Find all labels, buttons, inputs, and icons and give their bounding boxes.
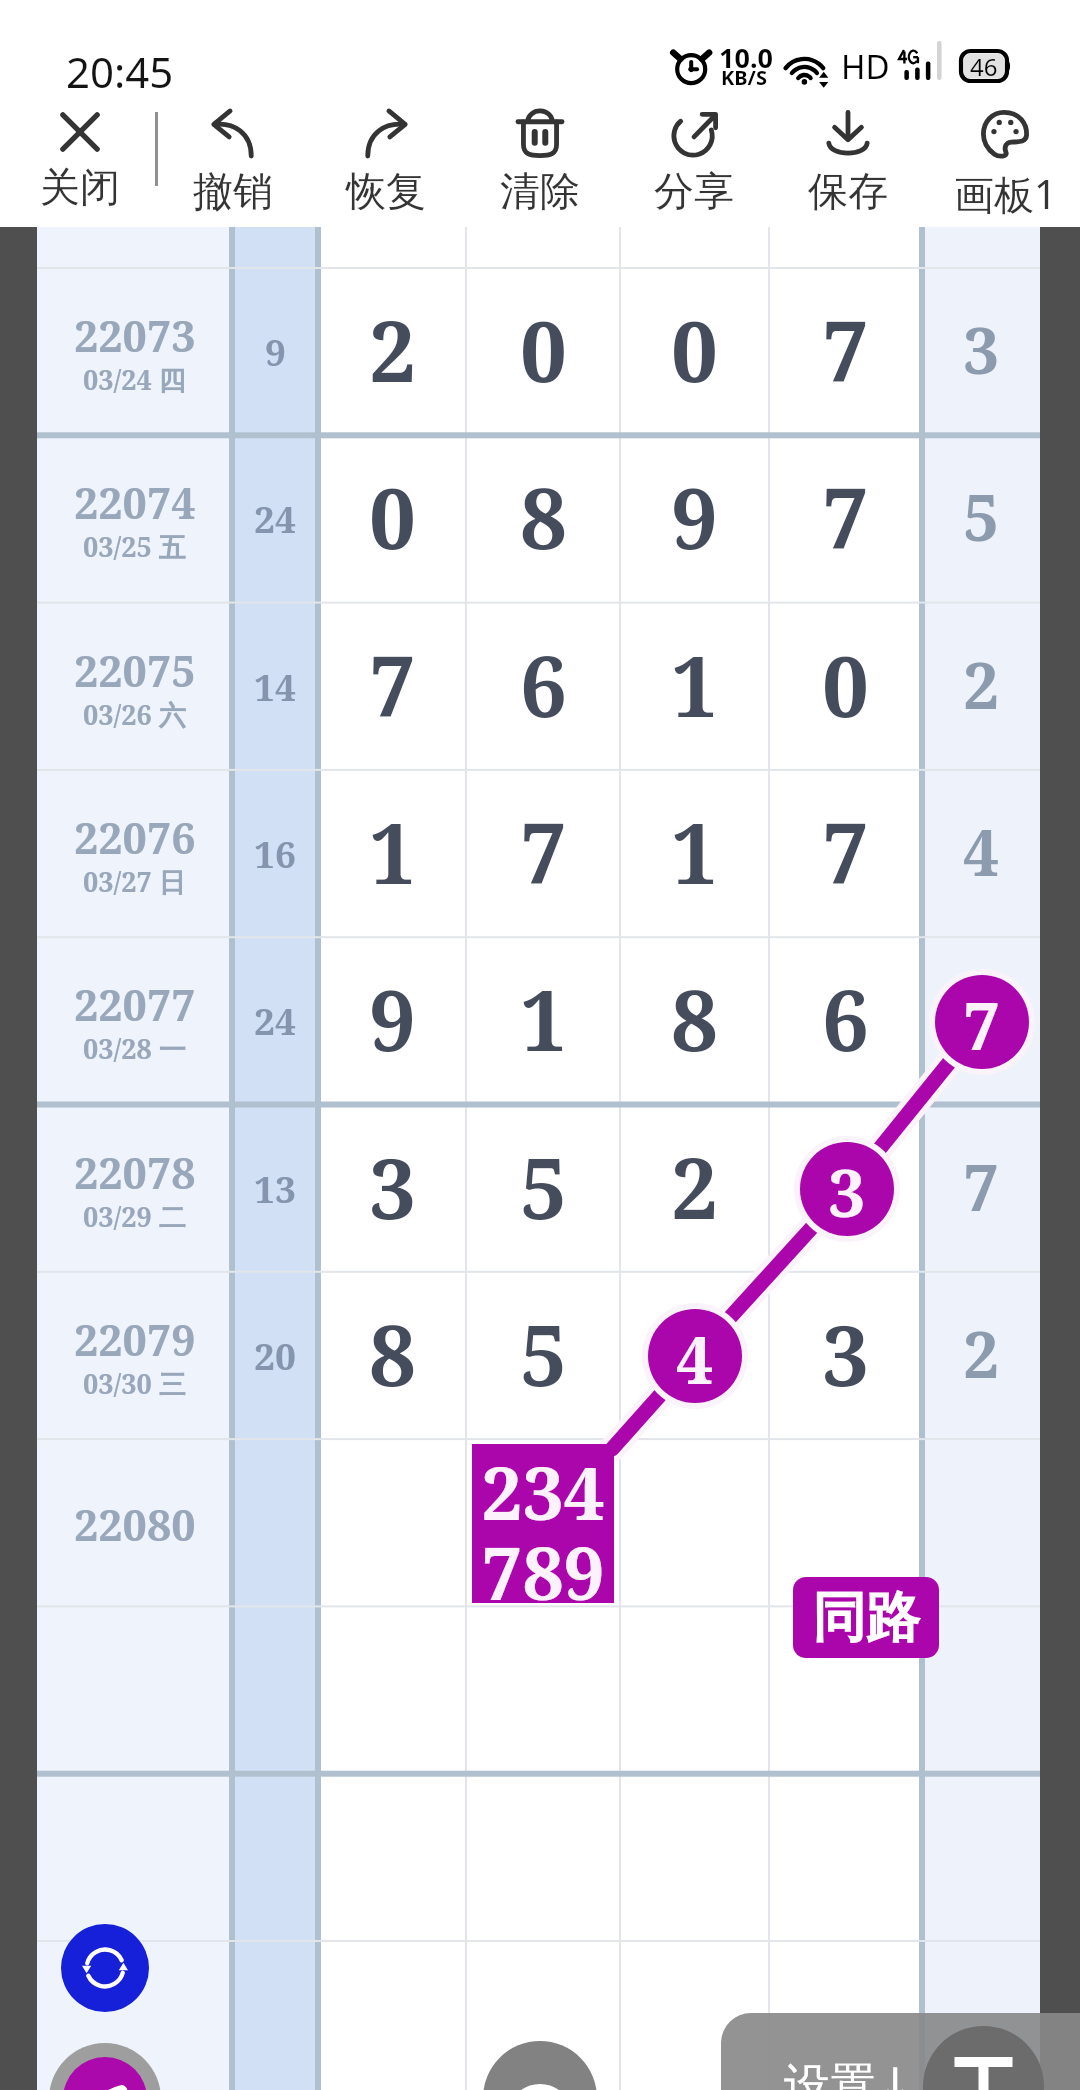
staticText: 22075 bbox=[74, 641, 196, 700]
button[interactable]: 关闭 bbox=[4, 100, 156, 238]
staticText: 20 bbox=[254, 1330, 296, 1380]
button[interactable]: 22077 bbox=[0, 937, 1080, 1104]
staticText: 22079 bbox=[74, 1310, 196, 1369]
staticText: 3 bbox=[822, 1297, 869, 1410]
staticText: 画板1 bbox=[954, 166, 1057, 221]
button[interactable]: 234 789 bbox=[472, 1444, 614, 1603]
staticText: 设置↓ bbox=[784, 2057, 915, 2090]
staticText: 0 bbox=[369, 460, 416, 573]
staticText: 9 bbox=[369, 962, 416, 1075]
staticText: 0 bbox=[671, 293, 718, 406]
staticText: 46 bbox=[970, 50, 998, 80]
button[interactable]: 画板1 bbox=[929, 100, 1080, 238]
staticText: 7 bbox=[369, 628, 416, 741]
staticText: 3 bbox=[369, 1130, 416, 1243]
staticText: 03/25 五 bbox=[83, 528, 186, 565]
staticText: 0 bbox=[822, 628, 869, 741]
staticText: 8 bbox=[520, 460, 567, 573]
staticText: 10.0 bbox=[719, 39, 773, 76]
staticText: 20:45 bbox=[66, 43, 174, 100]
staticText: 3 bbox=[963, 306, 1000, 393]
staticText: 6 bbox=[520, 628, 567, 741]
staticText: 22078 bbox=[74, 1143, 196, 1202]
button[interactable]: 22074 bbox=[0, 435, 1080, 602]
staticText: 22080 bbox=[74, 1495, 196, 1554]
staticText: HD bbox=[841, 44, 890, 89]
staticText: 5 bbox=[520, 1297, 567, 1410]
staticText: 3 bbox=[828, 1146, 866, 1236]
staticText: 1 bbox=[671, 628, 718, 741]
staticText: 03/30 三 bbox=[83, 1365, 186, 1402]
staticText: 1 bbox=[369, 795, 416, 908]
button[interactable]: 恢复 bbox=[310, 100, 462, 238]
button[interactable]: 同路 bbox=[793, 1577, 939, 1658]
staticText: 保存 bbox=[808, 166, 888, 216]
staticText: 03/28 一 bbox=[83, 1030, 186, 1067]
button[interactable]: Refresh bbox=[61, 1924, 149, 2012]
staticText: 2 bbox=[963, 641, 1000, 728]
staticText: 同路 bbox=[812, 1584, 920, 1652]
staticText: 8 bbox=[671, 962, 718, 1075]
button[interactable]: 22079 bbox=[0, 1272, 1080, 1439]
staticText: 撤销 bbox=[193, 166, 273, 216]
staticText: 7 bbox=[520, 795, 567, 908]
button[interactable]: 分享 bbox=[618, 100, 770, 238]
staticText: 分享 bbox=[654, 166, 734, 216]
staticText: 03/29 二 bbox=[83, 1198, 186, 1235]
button[interactable]: 保存 bbox=[772, 100, 924, 238]
staticText: 13 bbox=[254, 1163, 296, 1213]
staticText: 24 bbox=[254, 995, 296, 1045]
staticText: 清除 bbox=[500, 166, 580, 216]
staticText: 4 bbox=[671, 1297, 718, 1410]
staticText: 7 bbox=[963, 1143, 1000, 1230]
staticText: 22076 bbox=[74, 808, 196, 867]
staticText: 7 bbox=[822, 460, 869, 573]
staticText: 4 bbox=[963, 808, 1000, 895]
staticText: 9 bbox=[671, 460, 718, 573]
button[interactable]: 22080 bbox=[0, 1439, 1080, 1606]
staticText: 7 bbox=[963, 979, 1001, 1069]
button[interactable]: 22073 bbox=[0, 268, 1080, 435]
button[interactable]: 清除 bbox=[464, 100, 616, 238]
staticText: 03/26 六 bbox=[83, 696, 186, 733]
staticText: 4 bbox=[676, 1313, 714, 1403]
staticText: KB/S bbox=[721, 64, 767, 91]
staticText: 5 bbox=[963, 473, 1000, 560]
staticText: 9 bbox=[265, 326, 286, 376]
staticText: 234 789 bbox=[481, 1442, 605, 1601]
staticText: 22073 bbox=[74, 306, 196, 365]
staticText: 恢复 bbox=[346, 166, 426, 216]
button[interactable]: 22075 bbox=[0, 603, 1080, 770]
staticText: 5 bbox=[520, 1130, 567, 1243]
button[interactable]: 设置↓ bbox=[721, 2013, 1080, 2090]
staticText: 7 bbox=[963, 975, 1000, 1062]
staticText: 3 bbox=[822, 1130, 869, 1243]
staticText: 1 bbox=[671, 795, 718, 908]
button[interactable]: 22078 bbox=[0, 1105, 1080, 1272]
staticText: 22074 bbox=[74, 473, 196, 532]
button[interactable]: 撤销 bbox=[157, 100, 309, 238]
staticText: 2 bbox=[369, 293, 416, 406]
button[interactable]: Eraser tool bbox=[483, 2041, 597, 2090]
staticText: 2 bbox=[671, 1130, 718, 1243]
staticText: 7 bbox=[822, 293, 869, 406]
staticText: 2 bbox=[963, 1310, 1000, 1397]
staticText: 24 bbox=[254, 493, 296, 543]
staticText: 14 bbox=[254, 661, 296, 711]
staticText: 1 bbox=[520, 962, 567, 1075]
button[interactable]: 22076 bbox=[0, 770, 1080, 937]
staticText: 关闭 bbox=[40, 162, 120, 212]
button[interactable]: Pen tool bbox=[49, 2043, 161, 2090]
staticText: 22077 bbox=[74, 975, 196, 1034]
staticText: 03/27 日 bbox=[83, 863, 186, 900]
staticText: 16 bbox=[254, 828, 296, 878]
staticText: 6 bbox=[822, 962, 869, 1075]
staticText: 7 bbox=[822, 795, 869, 908]
staticText: 8 bbox=[369, 1297, 416, 1410]
staticText: 0 bbox=[520, 293, 567, 406]
staticText: 03/24 四 bbox=[83, 361, 186, 398]
button[interactable]: Text tool bbox=[923, 2026, 1044, 2090]
